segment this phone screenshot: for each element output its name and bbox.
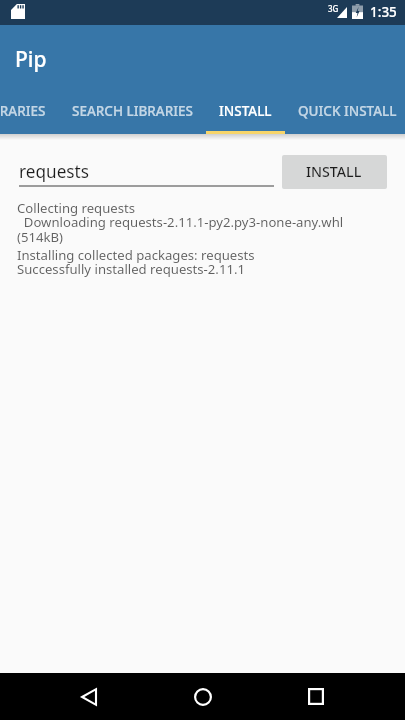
- button[interactable]: requests: [19, 153, 274, 187]
- other: Signal: [337, 7, 347, 18]
- staticText: (514kB): [17, 228, 63, 246]
- staticText: requests: [19, 160, 90, 183]
- staticText: Collecting requests: [17, 199, 136, 217]
- other: Battery: [352, 4, 363, 19]
- staticText: QUICK INSTALL: [298, 102, 397, 120]
- staticText: Installing collected packages: requests: [17, 246, 255, 264]
- button[interactable]: Recent apps: [294, 673, 338, 720]
- button[interactable]: Home: [181, 673, 225, 720]
- button[interactable]: SEARCH LIBRARIES: [59, 88, 206, 134]
- staticText: Pip: [15, 45, 47, 74]
- staticText: LIBRARIES: [0, 102, 46, 120]
- staticText: Downloading requests-2.11.1-py2.py3-none…: [17, 213, 344, 231]
- staticText: Successfully installed requests-2.11.1: [17, 260, 245, 278]
- button[interactable]: INSTALL: [282, 155, 387, 189]
- staticText: 3G: [328, 3, 339, 14]
- button[interactable]: LIBRARIES: [0, 88, 59, 134]
- staticText: INSTALL: [306, 162, 362, 181]
- button[interactable]: Back: [67, 673, 111, 720]
- staticText: INSTALL: [219, 102, 272, 120]
- button[interactable]: QUICK INSTALL: [285, 88, 405, 134]
- staticText: SEARCH LIBRARIES: [72, 102, 193, 120]
- staticText: 1:35: [370, 3, 397, 21]
- other: SD card: [11, 4, 25, 19]
- button[interactable]: INSTALL: [206, 88, 285, 134]
